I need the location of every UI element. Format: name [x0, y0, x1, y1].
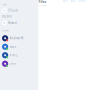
- button[interactable]: Kim L.: [0, 51, 38, 59]
- button[interactable]: Edit: [62, 0, 67, 3]
- staticText: Sort: [70, 0, 75, 3]
- staticText: 3 items: [39, 4, 47, 7]
- staticText: Tim F.: [10, 62, 17, 65]
- staticText: Kim L.: [10, 53, 18, 57]
- button[interactable]: Mia L.: [0, 42, 38, 51]
- button[interactable]: Done: [78, 0, 86, 3]
- button[interactable]: iCloud: [0, 8, 38, 13]
- staticText: Andrew W.: [10, 36, 24, 40]
- staticText: SHARED: [2, 29, 9, 32]
- staticText: Mia L.: [10, 45, 17, 48]
- button[interactable]: Tim F.: [0, 59, 38, 68]
- staticText: Files: [39, 0, 47, 4]
- staticText: Shared: [8, 21, 17, 25]
- staticText: RECENTS: [2, 15, 12, 18]
- staticText: APPS: [2, 3, 7, 6]
- staticText: Done: [78, 0, 86, 3]
- button[interactable]: Sort: [70, 0, 75, 3]
- staticText: iCloud: [8, 9, 18, 12]
- button[interactable]: Shared: [0, 20, 38, 25]
- button[interactable]: Andrew W.: [0, 34, 38, 42]
- staticText: Edit: [62, 0, 67, 3]
